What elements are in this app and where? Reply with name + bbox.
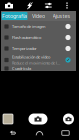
staticText: Temporizador [12,46,37,51]
button[interactable]: Vídeo [27,12,49,20]
button[interactable]: Camera mode [0,0,18,11]
staticText: Reduce el movimiento de la cámara [12,60,60,66]
button[interactable]: Temporizador [1,43,76,54]
button[interactable]: Record video [63,113,74,124]
staticText: Estabilización de vídeo [12,54,50,60]
button[interactable]: Adjust settings [41,0,55,11]
button[interactable]: Back [0,126,26,140]
button[interactable]: Cuadrícula [1,66,76,71]
staticText: Fotografía [2,12,27,20]
button[interactable]: Take photo [28,113,47,124]
button[interactable]: Open gallery [3,114,13,124]
button[interactable]: More options [60,0,74,11]
button[interactable]: Tamaño de imagen [1,21,76,32]
staticText: Cuadrícula [12,66,31,71]
button[interactable]: Flash automático [1,32,76,43]
button[interactable]: Flash off [23,0,37,11]
button[interactable]: Ajustes [49,12,73,20]
staticText: Flash automático [12,35,41,40]
staticText: Ajustes [52,12,70,20]
button[interactable]: Fotografía [1,12,27,20]
staticText: Tamaño de imagen [12,24,45,29]
button[interactable]: Estabilización de vídeo [1,54,76,66]
button[interactable]: Recent apps [52,126,78,140]
staticText: Vídeo [32,12,45,20]
button[interactable]: Home [26,126,52,140]
